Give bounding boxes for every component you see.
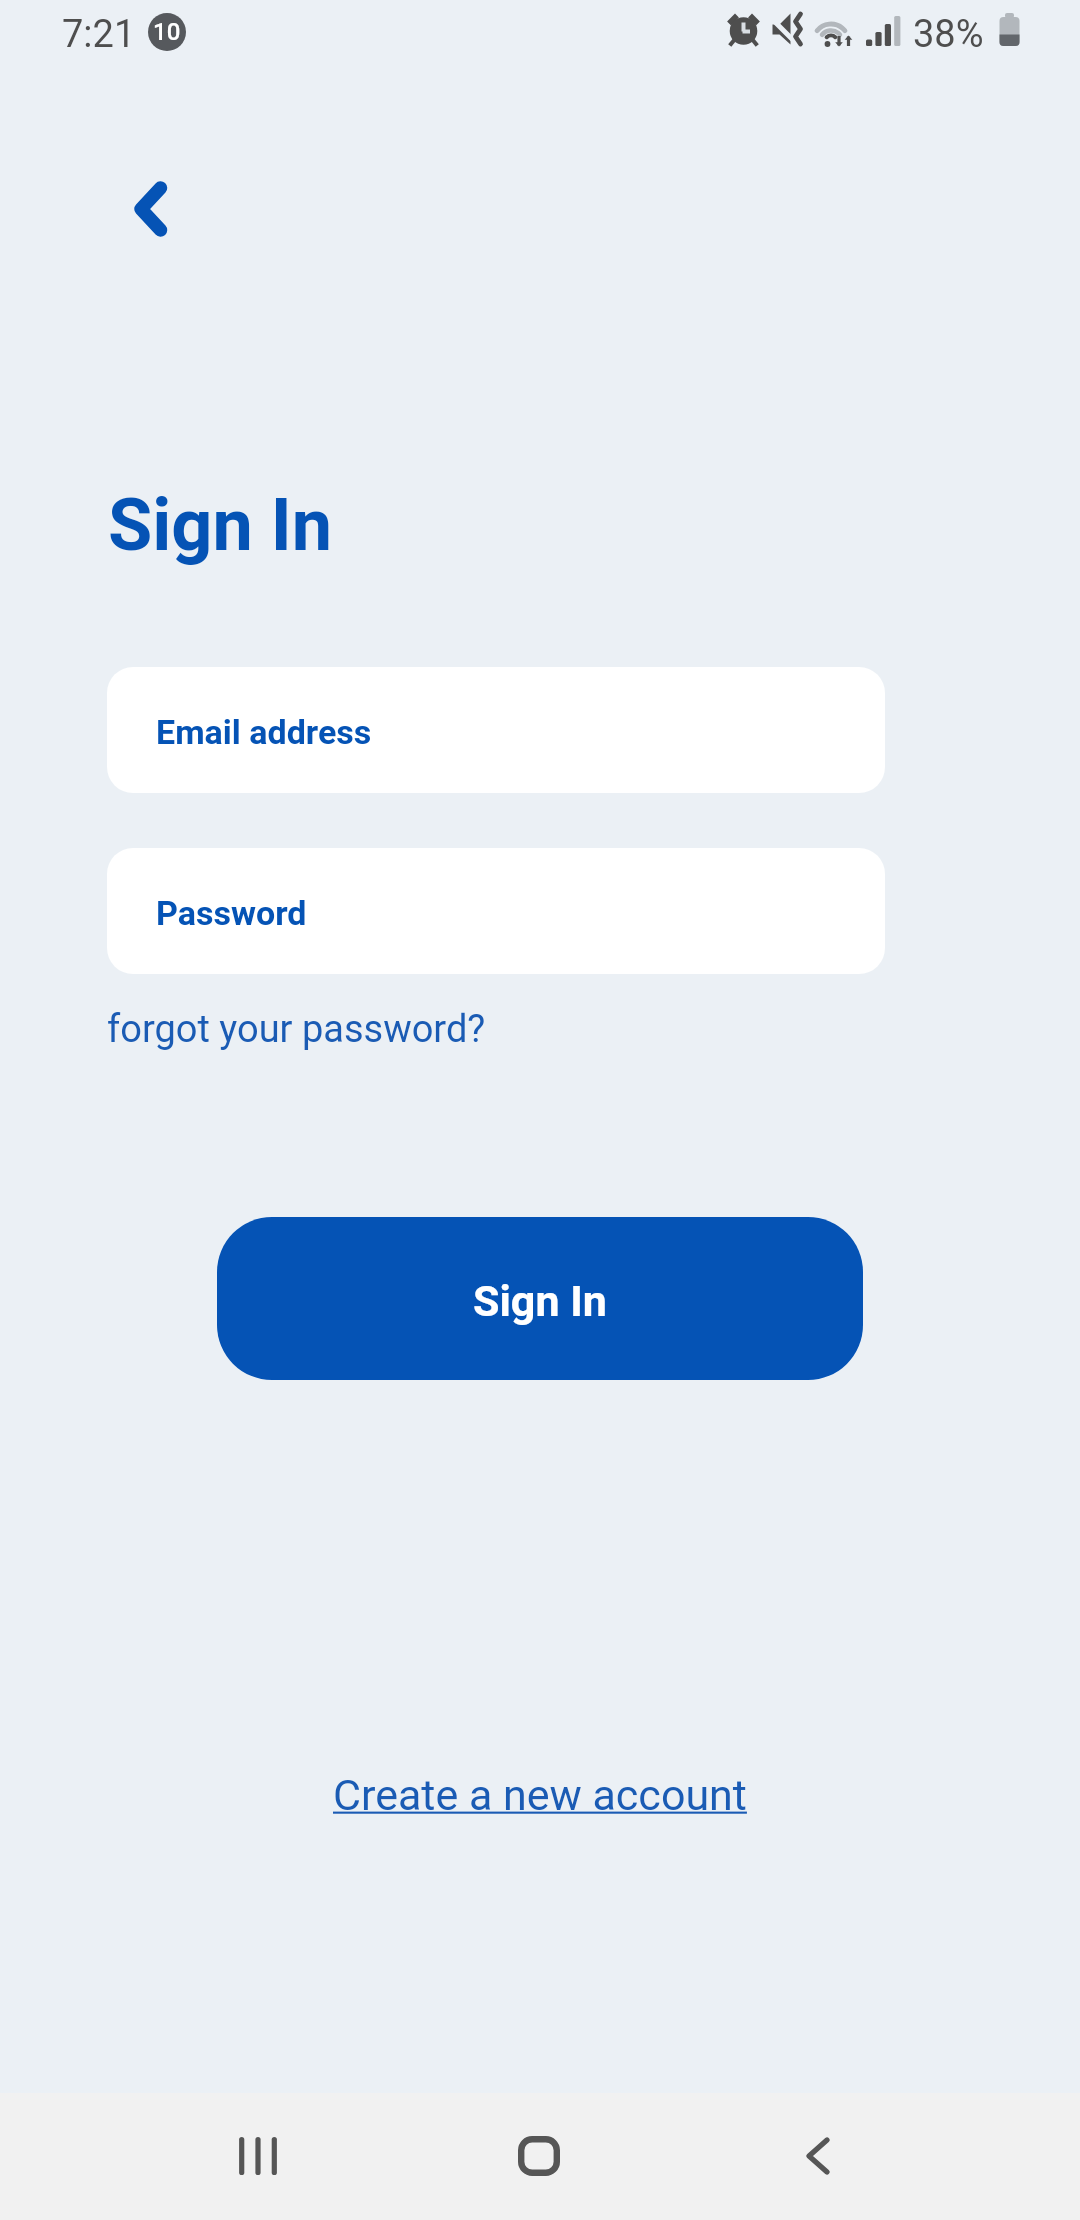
button[interactable]: Password (107, 848, 885, 974)
staticText: 10 (153, 18, 181, 46)
button[interactable]: forgot your password? (107, 1007, 486, 1052)
button[interactable]: Create a new account (333, 1770, 747, 1820)
button[interactable] (218, 2116, 298, 2196)
staticText: Email address (156, 712, 372, 752)
staticText: 38% (913, 12, 984, 57)
staticText: Sign In (473, 1276, 607, 1326)
button[interactable]: Email address (107, 667, 885, 793)
staticText: 7:21 (62, 12, 136, 57)
button[interactable] (499, 2116, 579, 2196)
staticText: Sign In (108, 483, 333, 567)
button[interactable] (778, 2116, 858, 2196)
button[interactable] (111, 178, 191, 240)
button[interactable]: Sign In (217, 1217, 863, 1380)
staticText: Password (156, 893, 307, 933)
